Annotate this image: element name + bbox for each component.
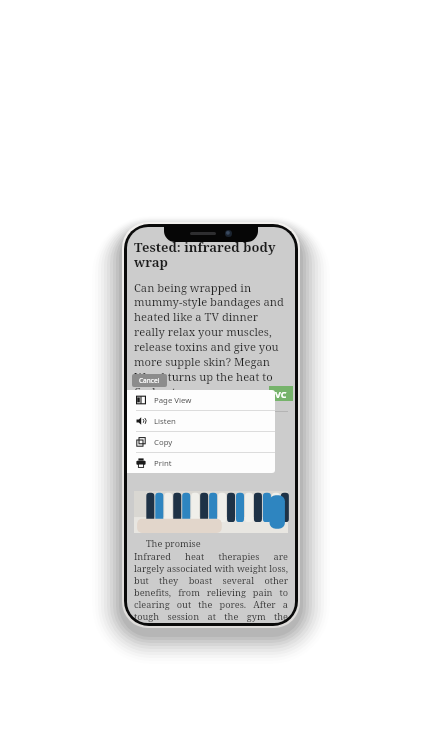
other: Page View xyxy=(136,395,146,405)
staticText: Can being wrapped in mummy-style bandage… xyxy=(134,280,286,400)
button[interactable]: Cancel xyxy=(132,374,167,387)
other: Print xyxy=(136,458,146,468)
button[interactable]: Print xyxy=(127,453,275,473)
staticText: VC xyxy=(275,388,287,400)
staticText: Infrared heat therapies are largely asso… xyxy=(134,550,288,623)
staticText: Copy xyxy=(154,437,173,448)
staticText: Cancel xyxy=(139,376,160,385)
staticText: Page View xyxy=(154,395,192,406)
other: Listen xyxy=(136,416,146,426)
button[interactable]: Page View xyxy=(127,390,275,410)
other: Copy xyxy=(136,437,146,447)
staticText: Print xyxy=(154,458,172,469)
staticText: Listen xyxy=(154,416,176,427)
button[interactable]: Listen xyxy=(127,411,275,431)
staticText: The promise xyxy=(134,537,201,550)
staticText: By Megan Wood · Tuesday 14 March 2023 · … xyxy=(134,416,258,423)
button[interactable]: Copy xyxy=(127,432,275,452)
staticText: Tested: infrared body wrap xyxy=(134,238,288,271)
